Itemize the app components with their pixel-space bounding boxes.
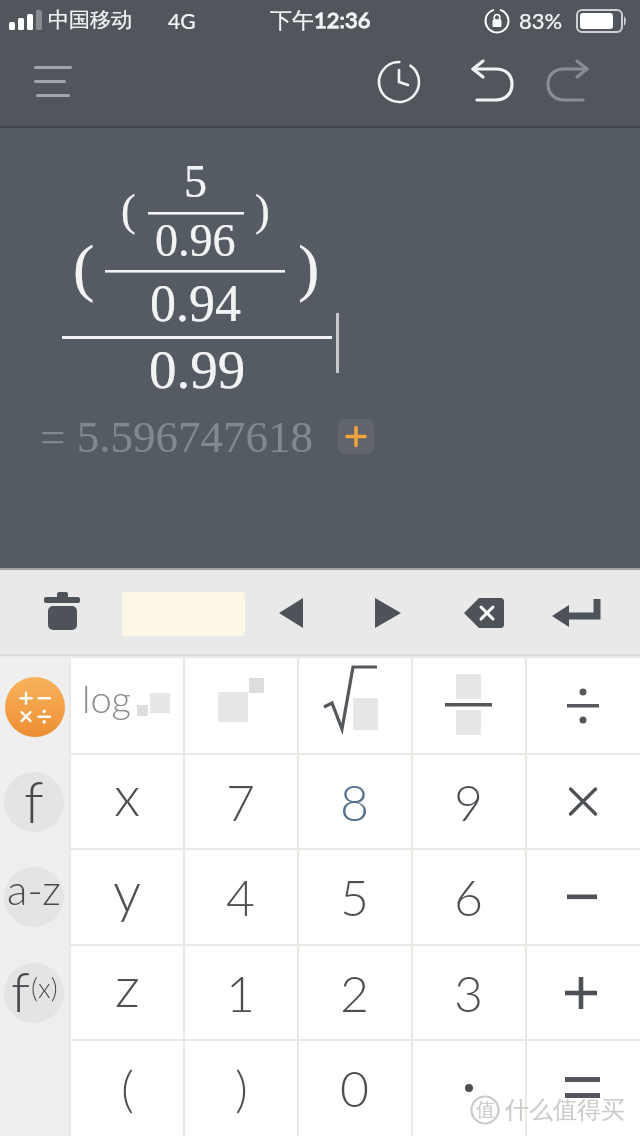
staticText: y [113,857,142,924]
button[interactable]: ( [70,1040,184,1136]
staticText: ) [298,232,320,303]
button[interactable] [526,1040,640,1136]
staticText: 中国移动 [48,7,132,33]
button[interactable] [526,945,640,1040]
button[interactable] [298,658,412,754]
staticText: 5 [340,867,370,927]
button[interactable] [412,658,526,754]
staticText: ) [235,1058,248,1118]
button[interactable] [526,754,640,849]
staticText: = 5.596747618 [40,412,313,462]
button[interactable] [24,52,84,112]
button[interactable]: 2 [298,945,412,1040]
staticText: f [11,963,31,1017]
button[interactable]: 7 [184,754,298,849]
button[interactable]: f [4,963,64,1023]
staticText: z [115,952,140,1019]
button[interactable]: ) [184,1040,298,1136]
button[interactable] [526,849,640,945]
staticText: 下午12:36 [270,6,371,34]
staticText: 0.99 [149,339,246,400]
button[interactable] [460,58,516,106]
button[interactable]: 6 [412,849,526,945]
staticText: 2 [340,963,370,1023]
staticText: 值 [476,1098,495,1122]
staticText: ( [73,232,95,303]
button[interactable] [526,658,640,754]
button[interactable]: 5 [298,849,412,945]
button[interactable]: a-z [4,867,64,927]
button[interactable] [5,677,65,737]
button[interactable] [546,586,606,638]
staticText: 8 [340,772,370,832]
button[interactable]: x [70,754,184,849]
staticText: 6 [454,867,484,927]
staticText: 83% [519,7,563,33]
staticText: log [82,675,131,721]
staticText: 5 [184,156,207,207]
staticText: 什么值得买 [505,1095,625,1125]
staticText: x [114,761,141,828]
button[interactable] [375,58,423,106]
staticText: 4G [168,8,196,33]
button[interactable] [456,586,512,638]
staticText: 1 [226,963,256,1023]
button[interactable] [526,754,640,849]
button[interactable]: 4 [184,849,298,945]
button[interactable] [266,586,318,638]
staticText: ( [121,1058,134,1118]
staticText: ) [255,186,270,235]
staticText: ( [121,186,136,235]
button[interactable] [184,658,298,754]
button[interactable]: 8 [298,754,412,849]
button[interactable]: y [70,849,184,945]
staticText: 0.94 [150,275,241,333]
button[interactable] [544,58,600,106]
button[interactable]: 9 [412,754,526,849]
button[interactable] [362,586,414,638]
button[interactable] [526,1040,640,1136]
button[interactable]: 3 [412,945,526,1040]
staticText: 3 [454,963,484,1023]
staticText: 9 [454,772,484,832]
staticText: 7 [226,772,256,832]
button[interactable]: log [70,658,184,754]
button[interactable] [412,1040,526,1136]
staticText: (x) [31,971,58,1003]
staticText: a-z [7,867,61,914]
staticText: 0.96 [155,215,236,266]
button[interactable]: 0 [298,1040,412,1136]
button[interactable] [34,582,90,642]
staticText: 0 [340,1058,370,1118]
button[interactable]: 1 [184,945,298,1040]
button[interactable] [526,849,640,945]
staticText: f [24,772,44,826]
button[interactable] [526,945,640,1040]
button[interactable]: z [70,945,184,1040]
staticText: 4 [226,867,256,927]
button[interactable]: f [4,772,64,832]
button[interactable] [412,1040,526,1136]
button[interactable] [338,419,374,454]
